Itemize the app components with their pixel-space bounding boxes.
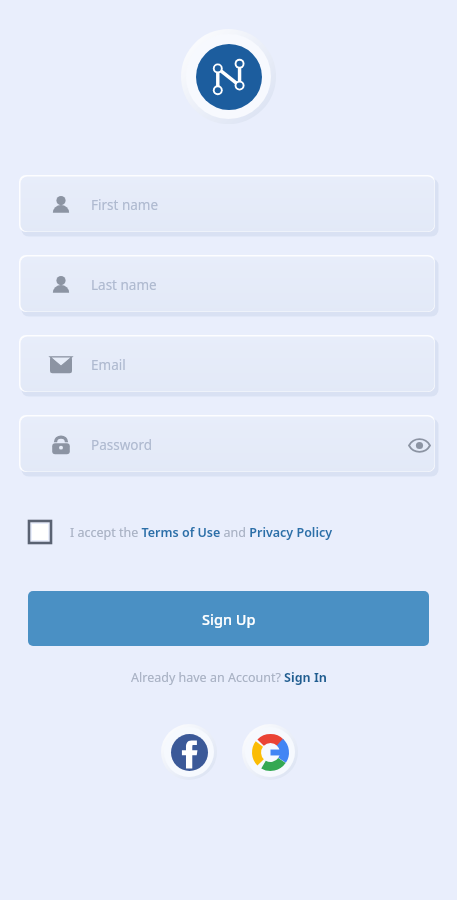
button[interactable]: Email — [19, 335, 438, 395]
button[interactable]: Show password — [400, 415, 438, 475]
staticText: Sign Up — [202, 609, 256, 629]
button[interactable]: Already have an Account? Sign In — [0, 664, 457, 690]
staticText: First name — [91, 196, 159, 214]
staticText: Last name — [91, 276, 157, 294]
button[interactable]: Sign Up — [28, 591, 429, 646]
staticText: Email — [91, 356, 126, 374]
staticText: Already have an Account? Sign In — [131, 669, 327, 686]
button[interactable]: Sign up with Google — [242, 724, 298, 780]
button[interactable]: App logo — [196, 44, 262, 110]
staticText: I accept the Terms of Use and Privacy Po… — [70, 524, 333, 541]
staticText: Password — [91, 436, 153, 454]
button[interactable]: I accept the Terms of Use and Privacy Po… — [28, 516, 333, 548]
button[interactable]: First name — [19, 175, 438, 235]
button[interactable]: Sign up with Facebook — [161, 724, 217, 780]
button[interactable]: Password — [19, 415, 438, 475]
button[interactable]: Last name — [19, 255, 438, 315]
